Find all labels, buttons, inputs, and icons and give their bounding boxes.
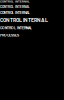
staticText: PROCESSES	[0, 32, 19, 38]
staticText: CONTROL INTERNAL	[0, 11, 30, 15]
staticText: CONTROL INTERNAL	[0, 0, 30, 3]
staticText: CONTROL INTERNAL	[0, 5, 30, 9]
staticText: CONTROL INTERNAL	[0, 25, 32, 30]
staticText: CONTROL INTERNAL	[0, 17, 48, 23]
